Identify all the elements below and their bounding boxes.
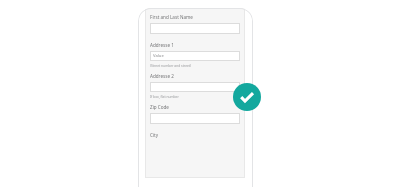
button[interactable]: First and Last Name	[150, 14, 193, 20]
staticText: (Street number and street)	[150, 63, 192, 67]
button[interactable]: Zip Code	[150, 104, 169, 110]
button[interactable]: Validated	[233, 83, 261, 111]
button[interactable]	[150, 82, 240, 92]
staticText: If box, flat number	[150, 94, 179, 98]
staticText: Value	[153, 53, 164, 59]
button[interactable]	[150, 23, 240, 34]
button[interactable]: Value	[150, 51, 240, 61]
button[interactable]: City	[150, 132, 159, 138]
button[interactable]	[150, 113, 240, 124]
button[interactable]: Addresse 2	[150, 73, 174, 79]
button[interactable]: Addresse 1	[150, 42, 174, 48]
